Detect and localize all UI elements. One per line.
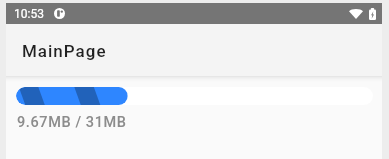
staticText: 10:53 — [14, 7, 44, 21]
other: Wi-Fi — [349, 8, 363, 19]
staticText: 9.67MB / 31MB — [17, 114, 127, 131]
other: Battery charging — [369, 8, 376, 20]
staticText: MainPage — [22, 41, 107, 61]
other: Notification — [54, 8, 65, 19]
button[interactable] — [16, 87, 373, 105]
